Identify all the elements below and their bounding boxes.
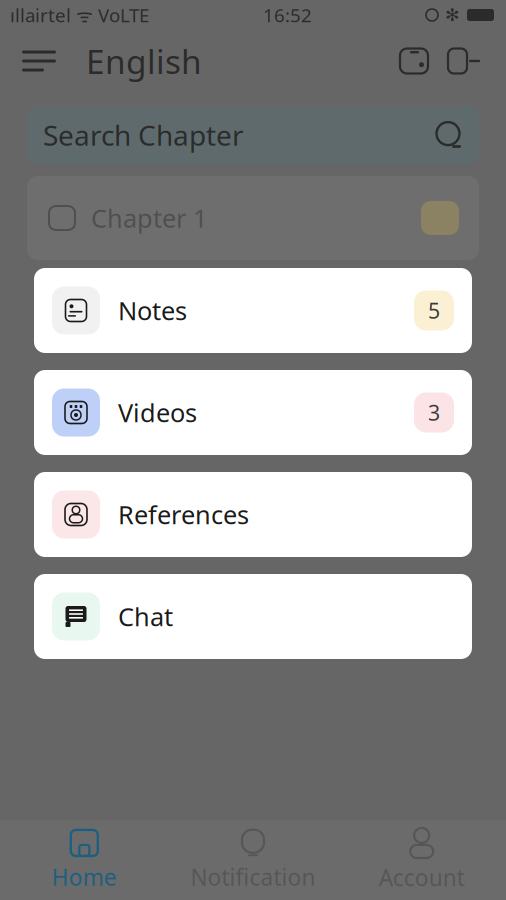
- button[interactable]: Chat: [34, 574, 472, 659]
- staticText: Notification: [190, 862, 315, 892]
- staticText: Account: [379, 862, 465, 892]
- staticText: English: [86, 39, 202, 83]
- button[interactable]: Menu: [10, 35, 68, 86]
- staticText: 3: [428, 398, 440, 427]
- button[interactable]: Videos: [34, 370, 472, 455]
- button[interactable]: Notes: [34, 268, 472, 353]
- staticText: Chapter 1: [91, 201, 207, 235]
- button[interactable]: Wallet: [390, 38, 438, 83]
- button[interactable]: Account: [337, 821, 506, 899]
- staticText: 5: [428, 296, 440, 325]
- staticText: ✻: [445, 5, 460, 25]
- staticText: 16:52: [263, 3, 312, 27]
- staticText: Chat: [118, 600, 173, 633]
- button[interactable]: Search Chapter: [27, 106, 479, 164]
- button[interactable]: Notification: [169, 821, 337, 899]
- staticText: Home: [52, 862, 117, 892]
- button[interactable]: Home: [0, 821, 169, 899]
- staticText: ıllairtel ᯤ VoLTE: [10, 3, 149, 27]
- staticText: Videos: [118, 396, 197, 429]
- button[interactable]: Log out: [438, 38, 490, 83]
- staticText: Notes: [118, 294, 187, 327]
- staticText: Search Chapter: [43, 116, 244, 154]
- button[interactable]: References: [34, 472, 472, 557]
- staticText: References: [118, 498, 249, 531]
